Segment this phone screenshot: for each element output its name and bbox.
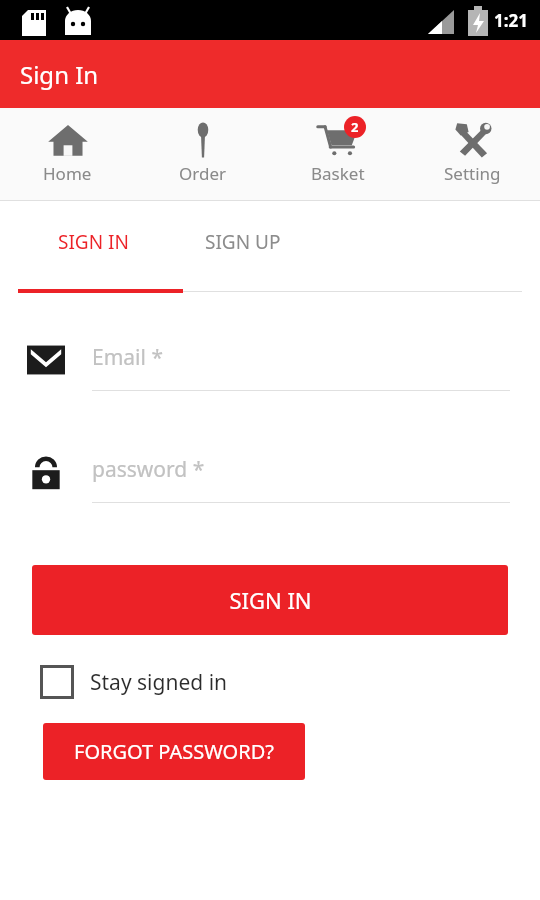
staticText: Order xyxy=(179,162,227,185)
staticText: Stay signed in xyxy=(90,668,228,697)
staticText: Sign In xyxy=(20,58,99,91)
staticText: 1:21 xyxy=(494,9,528,32)
button[interactable]: SIGN IN xyxy=(0,223,165,261)
button[interactable]: SIGN IN xyxy=(32,565,508,635)
button[interactable]: password * xyxy=(92,433,510,503)
button[interactable]: 2 xyxy=(270,108,405,185)
button[interactable]: Home xyxy=(0,108,135,185)
staticText: Basket xyxy=(311,162,365,185)
button[interactable]: Order xyxy=(135,108,270,185)
staticText: FORGOT PASSWORD? xyxy=(74,738,274,765)
button[interactable]: Setting xyxy=(405,108,540,185)
button[interactable]: FORGOT PASSWORD? xyxy=(43,723,305,780)
button[interactable]: Email * xyxy=(92,321,510,391)
staticText: Setting xyxy=(444,162,501,185)
staticText: Home xyxy=(43,162,92,185)
staticText: SIGN IN xyxy=(58,229,129,255)
staticText: SIGN IN xyxy=(229,585,312,615)
button[interactable]: Stay signed in xyxy=(40,665,228,699)
staticText: Email * xyxy=(92,343,163,372)
staticText: 2 xyxy=(351,118,359,136)
staticText: password * xyxy=(92,455,205,484)
staticText: SIGN UP xyxy=(205,229,281,255)
button[interactable]: SIGN UP xyxy=(165,223,330,261)
